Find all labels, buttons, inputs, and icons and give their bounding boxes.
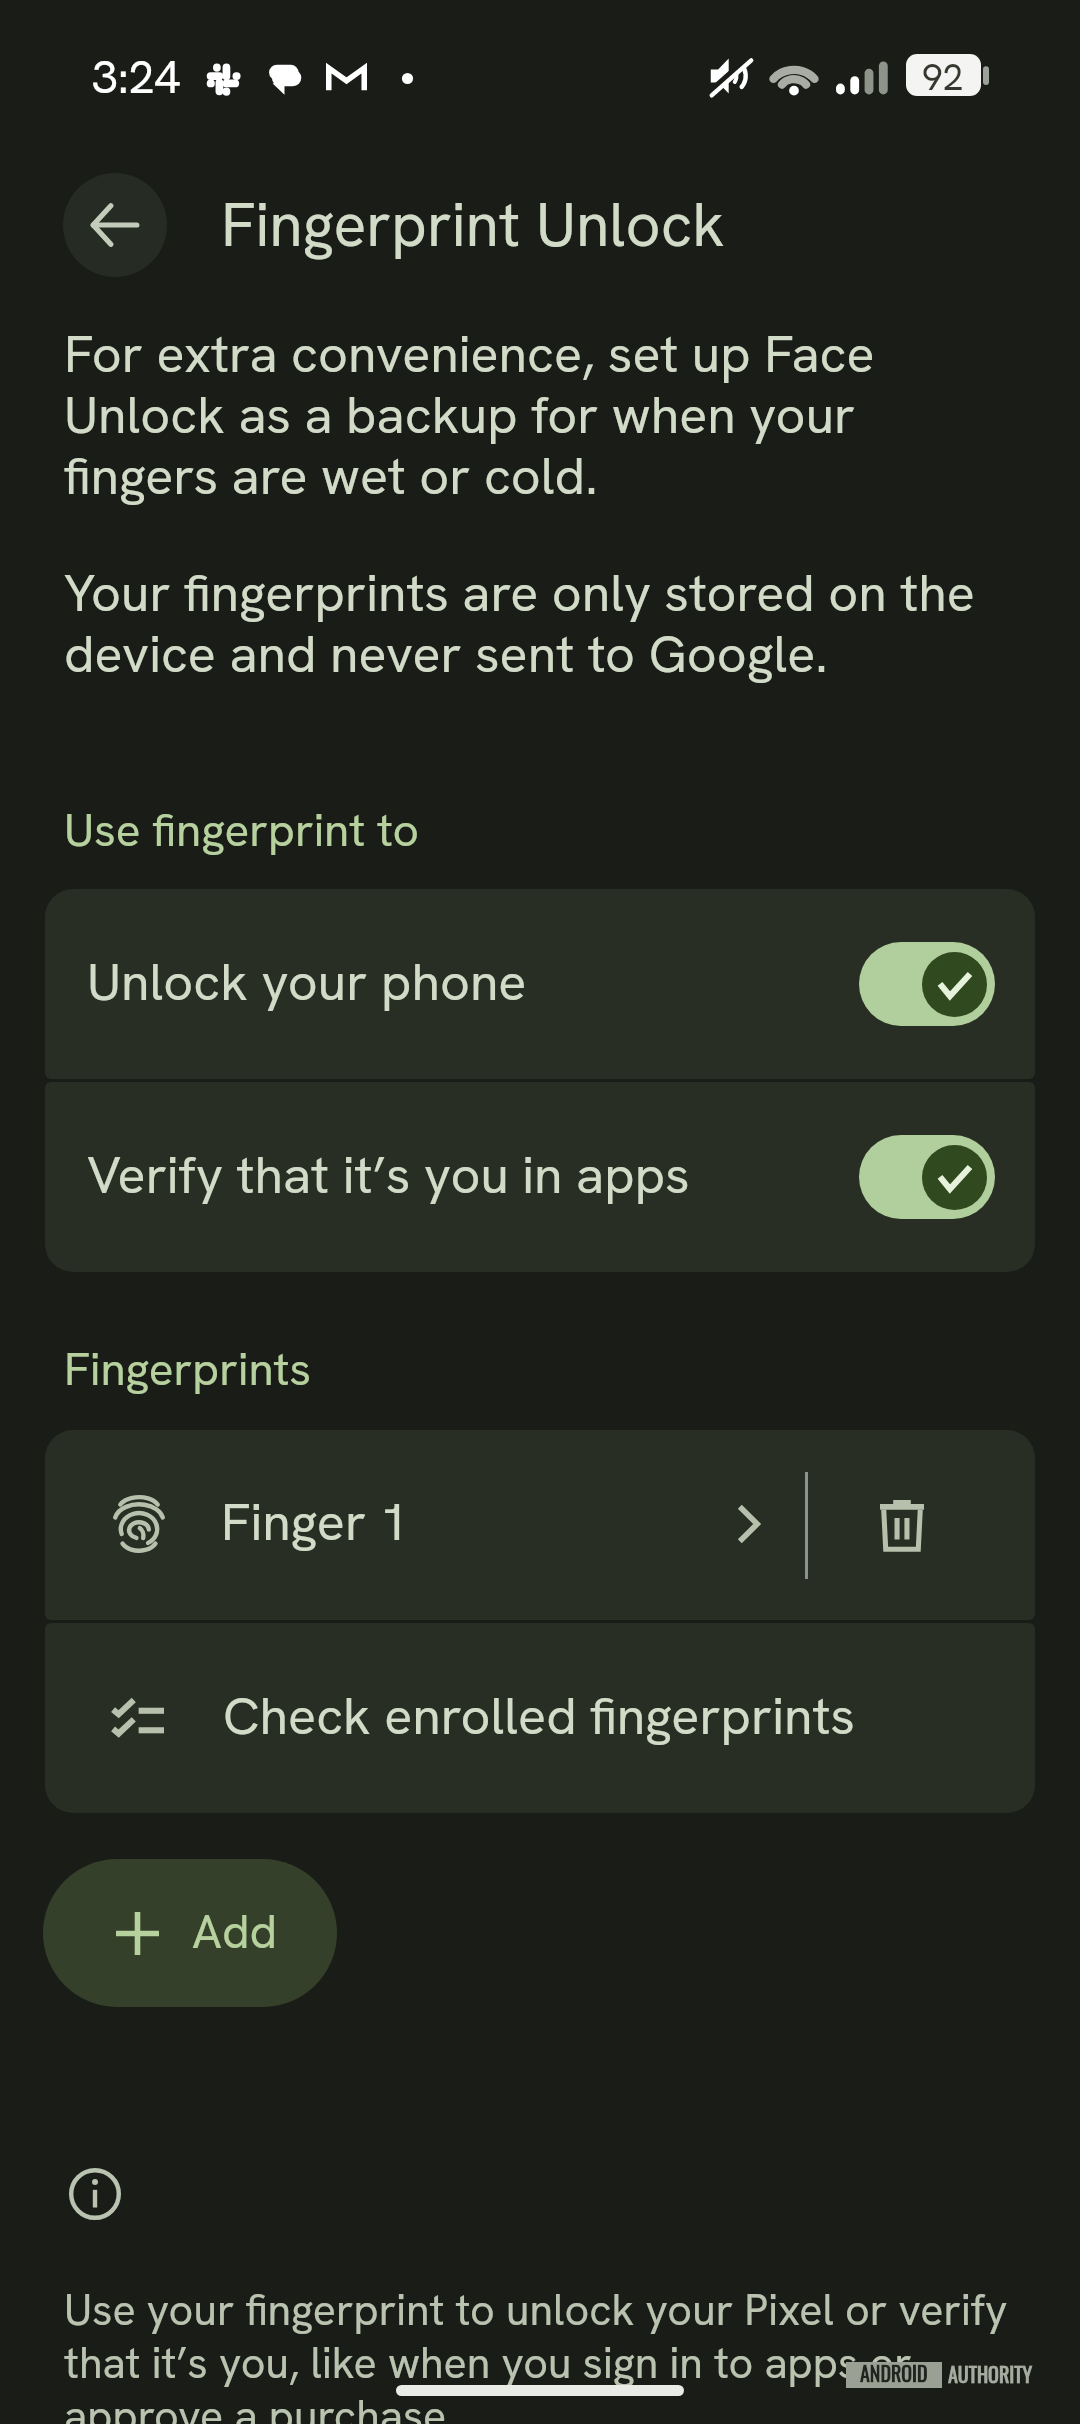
staticText: Check enrolled fingerprints <box>223 1688 855 1748</box>
staticText: 92 <box>922 58 964 100</box>
button[interactable]: Delete Finger 1 <box>808 1430 1035 1620</box>
staticText: Unlock your phone <box>87 954 859 1014</box>
button[interactable]: Check enrolled fingerprints <box>45 1623 1035 1813</box>
staticText: Use your fingerprint to unlock your Pixe… <box>64 2284 1064 2424</box>
staticText: Use fingerprint to <box>64 806 420 858</box>
staticText: 3:24 <box>92 53 181 105</box>
button[interactable]: Unlock your phone <box>45 889 1035 1079</box>
staticText: ANDROID <box>860 2364 928 2386</box>
staticText: Fingerprint Unlock <box>221 192 725 262</box>
button[interactable]: Verify that it’s you in apps <box>45 1082 1035 1272</box>
staticText: For extra convenience, set up Face Unloc… <box>64 325 904 508</box>
staticText: Verify that it’s you in apps <box>87 1147 859 1207</box>
staticText: Fingerprints <box>64 1345 312 1397</box>
staticText: Finger 1 <box>221 1494 409 1554</box>
staticText: Your fingerprints are only stored on the… <box>64 564 1024 686</box>
staticText: Add <box>192 1905 278 1961</box>
button[interactable]: Finger 1 <box>45 1430 805 1620</box>
button[interactable]: Add <box>43 1859 337 2007</box>
staticText: AUTHORITY <box>948 2365 1033 2387</box>
button[interactable]: Back <box>63 173 167 277</box>
